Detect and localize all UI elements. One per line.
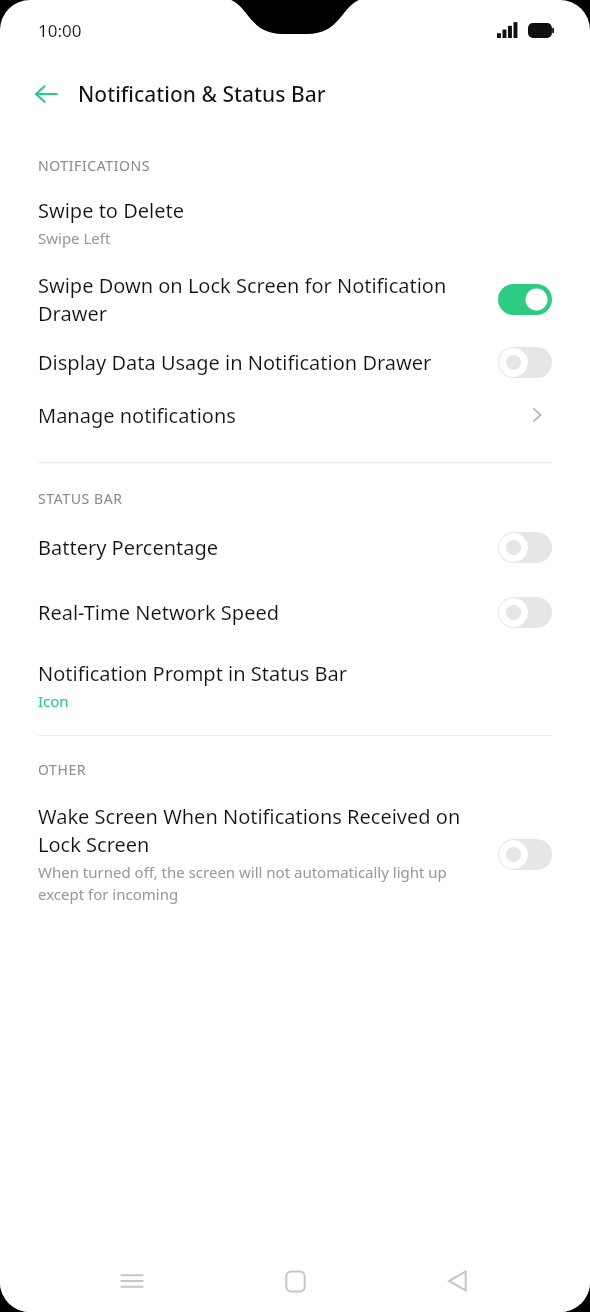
button[interactable]: Back [427,1250,489,1312]
staticText: Battery Percentage [38,534,219,561]
staticText: Real-Time Network Speed [38,599,279,626]
button[interactable]: Display Data Usage in Notification Drawe… [0,347,590,378]
staticText: Wake Screen When Notifications Received … [38,803,484,858]
staticText: Icon [38,691,69,711]
staticText: Swipe Left [38,228,111,248]
staticText: OTHER [38,760,87,779]
other: Open [522,400,552,430]
staticText: Display Data Usage in Notification Drawe… [38,349,432,376]
button[interactable]: Wake Screen When Notifications Received … [0,803,590,905]
button[interactable]: Toggle on [498,284,552,315]
button[interactable]: Swipe Down on Lock Screen for Notificati… [0,272,590,327]
staticText: Notification & Status Bar [78,80,326,109]
button[interactable]: Real-Time Network Speed [0,597,590,628]
staticText: Swipe to Delete [38,197,184,224]
button[interactable]: Recent apps [101,1250,163,1312]
button[interactable]: Battery Percentage [0,532,590,563]
staticText: 10:00 [38,19,82,42]
button[interactable]: Toggle off [498,532,552,563]
button[interactable]: Toggle off [498,347,552,378]
staticText: Notification Prompt in Status Bar [38,660,348,687]
button[interactable]: Manage notifications [0,400,590,430]
button[interactable]: Home [264,1250,326,1312]
button[interactable]: Toggle off [498,597,552,628]
button[interactable]: Back [22,70,70,118]
staticText: Swipe Down on Lock Screen for Notificati… [38,272,484,327]
staticText: STATUS BAR [38,489,123,508]
button[interactable]: Toggle off [498,839,552,870]
button[interactable]: Swipe to Delete [0,197,590,248]
button[interactable]: Notification Prompt in Status Bar [0,660,590,711]
staticText: NOTIFICATIONS [38,156,151,175]
staticText: Manage notifications [38,402,236,429]
staticText: When turned off, the screen will not aut… [38,862,484,905]
